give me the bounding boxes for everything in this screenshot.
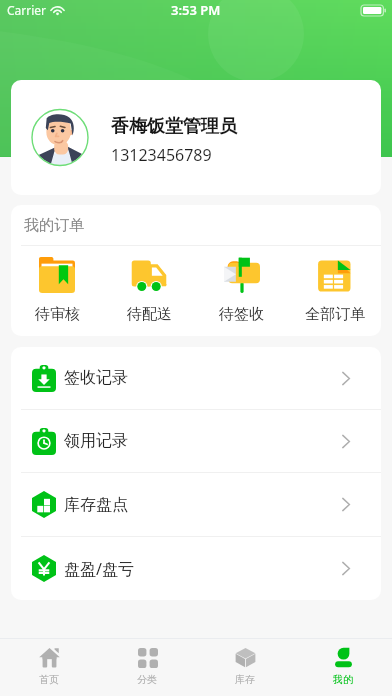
- staticText: 香梅饭堂管理员: [111, 115, 237, 138]
- staticText: 3:53 PM: [171, 1, 221, 19]
- staticText: 库存盘点: [64, 495, 128, 515]
- button[interactable]: 首页: [0, 639, 98, 696]
- button[interactable]: 库存: [196, 639, 294, 696]
- staticText: Carrier: [7, 2, 47, 18]
- button[interactable]: 领用记录: [11, 410, 381, 472]
- staticText: 我的: [333, 673, 353, 686]
- staticText: 待配送: [127, 305, 172, 324]
- button[interactable]: 我的: [294, 639, 392, 696]
- button[interactable]: 待配送: [103, 246, 195, 336]
- button[interactable]: 盘盈/盘亏: [11, 537, 381, 600]
- staticText: 13123456789: [111, 144, 212, 166]
- button[interactable]: 签收记录: [11, 347, 381, 409]
- button[interactable]: 库存盘点: [11, 473, 381, 536]
- staticText: 库存: [235, 673, 255, 686]
- staticText: 全部订单: [305, 305, 365, 324]
- button[interactable]: 分类: [98, 639, 196, 696]
- staticText: 首页: [39, 673, 59, 686]
- button[interactable]: 全部订单: [288, 246, 381, 336]
- staticText: 签收记录: [64, 368, 128, 388]
- button[interactable]: 待签收: [195, 246, 288, 336]
- button[interactable]: 待审核: [11, 246, 103, 336]
- staticText: 待签收: [219, 305, 264, 324]
- button[interactable]: 香梅饭堂管理员: [11, 80, 381, 195]
- staticText: 盘盈/盘亏: [64, 558, 134, 580]
- staticText: 我的订单: [24, 216, 84, 235]
- staticText: 领用记录: [64, 431, 128, 451]
- staticText: 分类: [137, 673, 157, 686]
- staticText: 待审核: [35, 305, 80, 324]
